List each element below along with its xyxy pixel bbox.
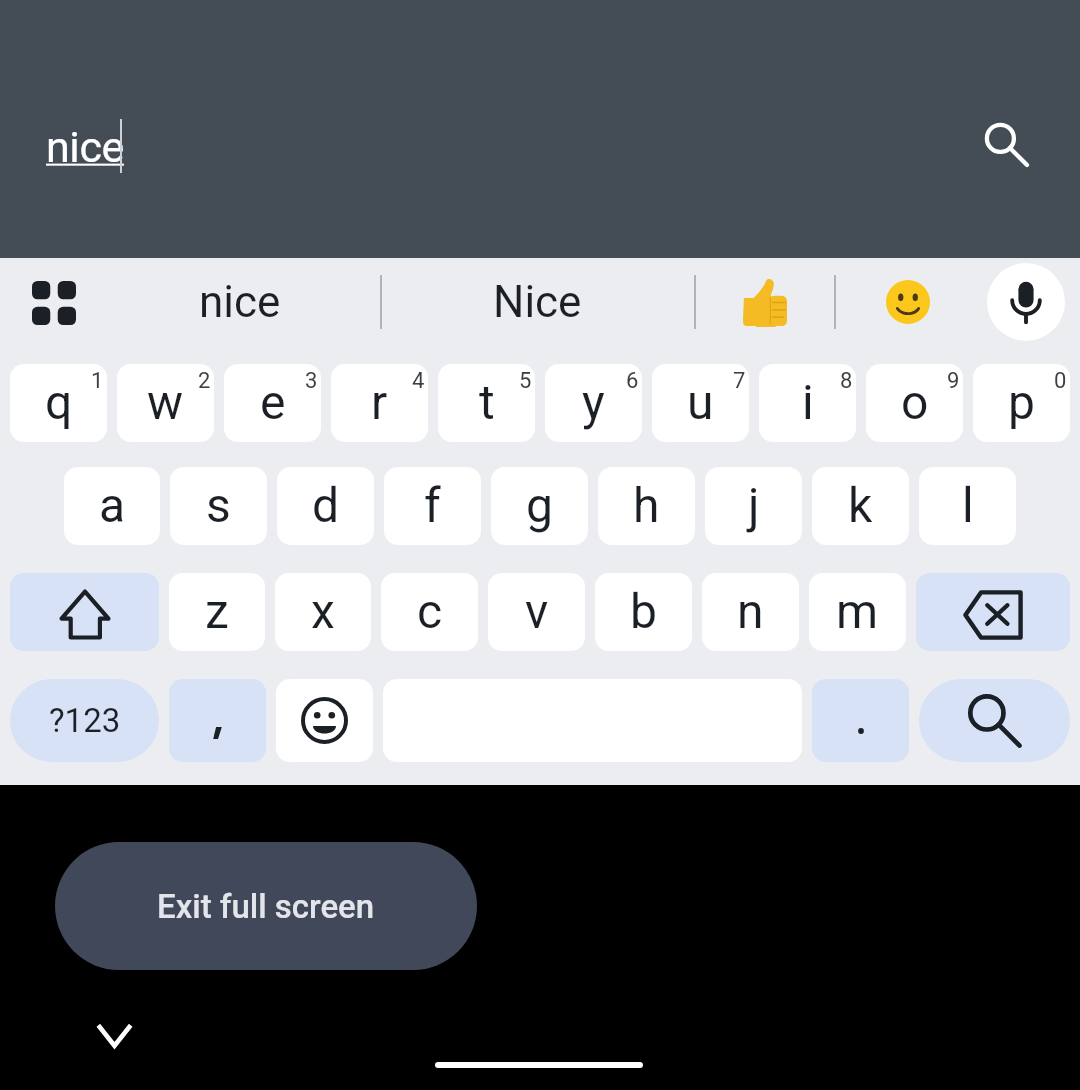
- button[interactable]: Search: [967, 105, 1047, 185]
- staticText: 9: [947, 368, 960, 394]
- button[interactable]: z: [169, 573, 265, 651]
- button[interactable]: Exit full screen: [55, 842, 477, 970]
- staticText: l: [962, 477, 974, 533]
- button[interactable]: g: [491, 467, 588, 545]
- staticText: j: [748, 477, 760, 533]
- staticText: d: [312, 477, 340, 533]
- staticText: h: [633, 477, 660, 533]
- staticText: 3: [305, 368, 318, 394]
- button[interactable]: r: [331, 364, 428, 442]
- button[interactable]: x: [275, 573, 371, 651]
- staticText: nice: [46, 122, 124, 172]
- button[interactable]: e: [224, 364, 321, 442]
- button[interactable]: s: [170, 467, 267, 545]
- button[interactable]: c: [381, 573, 478, 651]
- button[interactable]: q: [10, 364, 107, 442]
- button[interactable]: Backspace: [916, 573, 1070, 651]
- staticText: b: [630, 583, 657, 639]
- staticText: nice: [199, 276, 281, 328]
- staticText: a: [99, 477, 126, 533]
- staticText: 5: [519, 368, 532, 394]
- staticText: w: [147, 374, 184, 430]
- button[interactable]: Search: [919, 679, 1070, 762]
- staticText: f: [424, 477, 441, 533]
- button[interactable]: a: [64, 467, 160, 545]
- staticText: y: [582, 374, 605, 430]
- button[interactable]: nice: [40, 100, 940, 192]
- button[interactable]: Comma: [169, 679, 266, 762]
- staticText: 8: [840, 368, 853, 394]
- button[interactable]: Voice input: [987, 263, 1065, 341]
- staticText: x: [311, 583, 335, 639]
- staticText: k: [848, 477, 873, 533]
- button[interactable]: k: [812, 467, 909, 545]
- staticText: 4: [412, 368, 425, 394]
- staticText: t: [479, 374, 495, 430]
- staticText: 0: [1054, 368, 1067, 394]
- staticText: Exit full screen: [157, 887, 375, 926]
- button[interactable]: Collapse keyboard: [79, 1000, 149, 1070]
- staticText: u: [687, 374, 714, 430]
- button[interactable]: j: [705, 467, 802, 545]
- button[interactable]: h: [598, 467, 695, 545]
- staticText: 2: [198, 368, 211, 394]
- button[interactable]: Period: [812, 679, 909, 762]
- staticText: z: [205, 583, 229, 639]
- button[interactable]: Keyboard toolbar: [19, 268, 89, 338]
- staticText: s: [206, 477, 231, 533]
- button[interactable]: l: [919, 467, 1016, 545]
- button[interactable]: Nice: [400, 258, 675, 346]
- staticText: q: [45, 374, 73, 430]
- staticText: m: [836, 583, 879, 639]
- button[interactable]: f: [384, 467, 481, 545]
- button[interactable]: nice: [115, 258, 365, 346]
- staticText: 1: [91, 368, 104, 394]
- staticText: o: [901, 374, 929, 430]
- staticText: n: [737, 583, 764, 639]
- staticText: ?123: [49, 701, 121, 740]
- button[interactable]: p: [973, 364, 1070, 442]
- staticText: g: [526, 477, 553, 533]
- staticText: 6: [626, 368, 639, 394]
- button[interactable]: Smiley emoji suggestion: [848, 258, 968, 346]
- button[interactable]: w: [117, 364, 214, 442]
- staticText: p: [1008, 374, 1035, 430]
- button[interactable]: d: [277, 467, 374, 545]
- button[interactable]: Shift: [10, 573, 159, 651]
- staticText: i: [802, 374, 814, 430]
- button[interactable]: b: [595, 573, 692, 651]
- button[interactable]: ?123: [10, 679, 159, 762]
- button[interactable]: y: [545, 364, 642, 442]
- staticText: v: [525, 583, 549, 639]
- staticText: Nice: [493, 276, 582, 328]
- button[interactable]: n: [702, 573, 799, 651]
- button[interactable]: m: [809, 573, 906, 651]
- button[interactable]: t: [438, 364, 535, 442]
- button[interactable]: Thumbs up emoji suggestion: [705, 258, 825, 346]
- staticText: e: [260, 374, 286, 430]
- button[interactable]: v: [488, 573, 585, 651]
- button[interactable]: Emoji: [276, 679, 373, 762]
- staticText: c: [417, 583, 443, 639]
- staticText: 7: [733, 368, 746, 394]
- button[interactable]: i: [759, 364, 856, 442]
- button[interactable]: u: [652, 364, 749, 442]
- button[interactable]: o: [866, 364, 963, 442]
- staticText: r: [371, 374, 388, 430]
